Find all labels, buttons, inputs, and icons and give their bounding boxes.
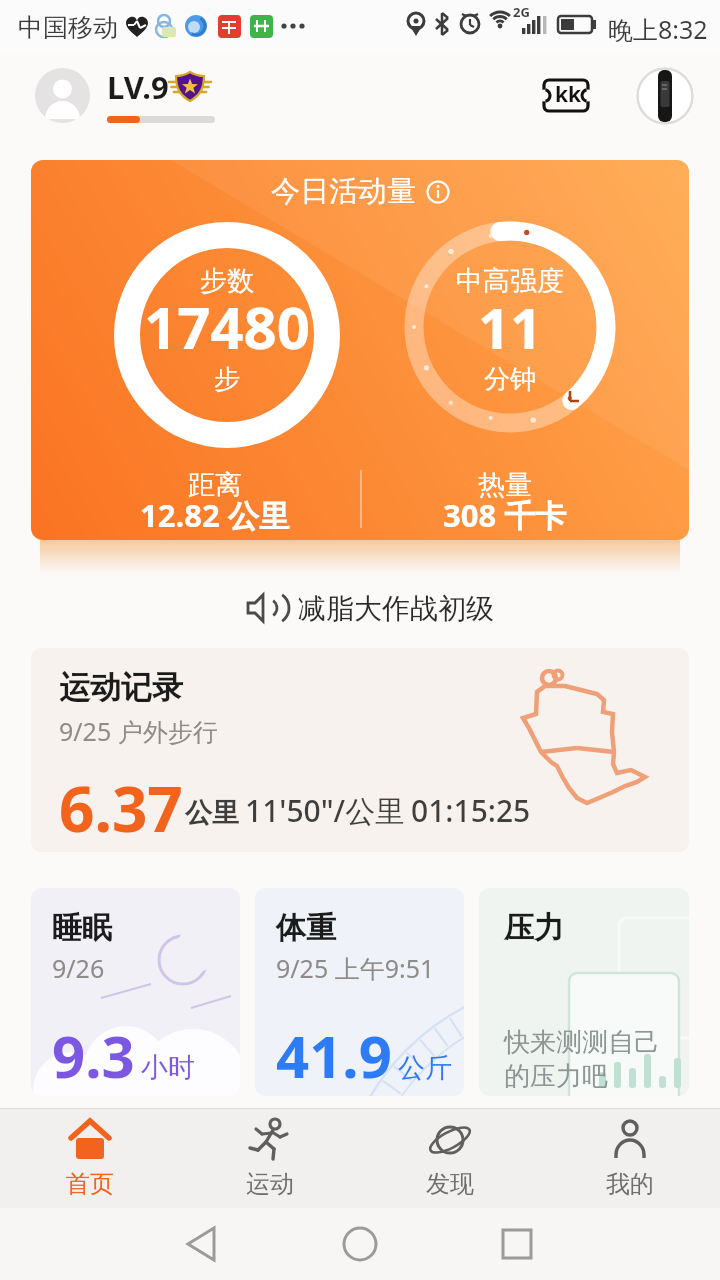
button[interactable]: 减脂大作战初级	[8, 588, 720, 628]
staticText: 运动	[246, 1169, 294, 1199]
staticText: 快来测测自己	[504, 1026, 660, 1059]
button[interactable]	[240, 1208, 480, 1280]
staticText: 距离	[188, 468, 242, 502]
staticText: 11'50"/公里	[245, 790, 406, 831]
staticText: 公斤	[398, 1051, 452, 1085]
staticText: 的压力吧	[504, 1060, 608, 1093]
button[interactable]: 我的	[570, 1116, 690, 1208]
staticText: 17480	[144, 287, 310, 366]
button[interactable]: 今日活动量	[31, 160, 689, 540]
staticText: 步数	[200, 264, 254, 298]
staticText: 运动记录	[59, 668, 183, 707]
staticText: 首页	[66, 1169, 114, 1199]
staticText: 9/26	[52, 951, 105, 985]
staticText: 9/25 上午9:51	[276, 951, 435, 985]
staticText: 01:15:25	[411, 790, 531, 831]
button[interactable]: 睡眠	[31, 888, 240, 1096]
staticText: 9.3	[52, 1016, 135, 1095]
staticText: 晚上8:32	[608, 12, 708, 46]
button[interactable]: 首页	[30, 1116, 150, 1208]
staticText: 公里	[185, 796, 239, 830]
staticText: 睡眠	[52, 909, 112, 947]
staticText: 体重	[276, 909, 336, 947]
staticText: 发现	[426, 1169, 474, 1199]
staticText: 9/25 户外步行	[59, 714, 218, 748]
staticText: 小时	[141, 1051, 195, 1085]
button[interactable]: kk	[542, 78, 592, 114]
button[interactable]: 压力	[479, 888, 689, 1096]
staticText: 41.9	[276, 1016, 392, 1095]
staticText: 分钟	[484, 363, 536, 396]
staticText: 步	[214, 363, 240, 396]
staticText: 压力	[504, 909, 564, 947]
button[interactable]: 运动	[210, 1116, 330, 1208]
staticText: 热量	[478, 468, 532, 502]
staticText: 中高强度	[456, 264, 564, 298]
staticText: 减脂大作战初级	[298, 591, 494, 626]
button[interactable]: 体重	[255, 888, 464, 1096]
button[interactable]	[35, 68, 90, 123]
button[interactable]: 运动记录	[31, 648, 689, 852]
staticText: 我的	[606, 1169, 654, 1199]
staticText: 中国移动	[18, 12, 118, 43]
staticText: 6.37	[59, 766, 183, 850]
staticText: 今日活动量	[271, 173, 416, 210]
button[interactable]	[636, 67, 694, 125]
staticText: 11	[478, 289, 543, 365]
staticText: 12.82 公里	[140, 494, 290, 536]
button[interactable]	[0, 1208, 240, 1280]
button[interactable]	[480, 1208, 720, 1280]
button[interactable]: 发现	[390, 1116, 510, 1208]
staticText: kk	[555, 80, 582, 109]
staticText: LV.9	[107, 66, 169, 108]
staticText: 308 千卡	[443, 494, 567, 536]
staticText: 2G	[513, 3, 530, 21]
